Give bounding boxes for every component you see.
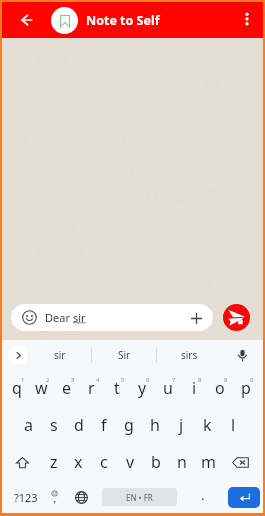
button[interactable]: Enter <box>228 487 260 508</box>
staticText: Dear <box>45 310 73 325</box>
staticText: 9 <box>224 376 228 384</box>
button[interactable]: b <box>143 444 169 481</box>
staticText: 8 <box>198 376 202 384</box>
button[interactable]: e <box>54 370 79 407</box>
staticText: p <box>241 377 251 399</box>
button[interactable]: s <box>41 407 66 444</box>
staticText: sir <box>54 348 66 362</box>
staticText: l <box>231 414 236 436</box>
staticText: u <box>163 377 173 399</box>
staticText: Note to Self <box>86 12 160 29</box>
staticText: sir <box>73 310 86 325</box>
button[interactable]: p <box>233 370 259 407</box>
staticText: ?123 <box>14 490 38 505</box>
staticText: 1 <box>21 376 25 384</box>
button[interactable]: j <box>168 407 194 444</box>
staticText: o <box>215 377 225 399</box>
button[interactable]: l <box>220 407 246 444</box>
button[interactable]: EN • FR <box>102 488 177 506</box>
staticText: d <box>74 414 84 436</box>
staticText: 0 <box>250 376 254 384</box>
staticText: f <box>101 414 107 436</box>
button[interactable]: n <box>169 444 195 481</box>
staticText: r <box>88 377 95 399</box>
staticText: h <box>150 414 160 436</box>
staticText: 3 <box>71 376 75 384</box>
button[interactable]: y <box>129 370 155 407</box>
button[interactable]: Shift <box>4 444 41 481</box>
button[interactable]: d <box>66 407 91 444</box>
staticText: i <box>192 377 197 399</box>
staticText: sirs <box>181 348 198 362</box>
button[interactable]: sir <box>28 340 91 370</box>
staticText: q <box>12 377 22 399</box>
staticText: Sir <box>118 348 131 362</box>
staticText: c <box>100 451 108 473</box>
staticText: t <box>114 377 120 399</box>
button[interactable]: w <box>29 370 54 407</box>
staticText: b <box>151 451 161 473</box>
staticText: m <box>201 451 216 473</box>
staticText: y <box>138 377 147 399</box>
button[interactable]: z <box>41 444 66 481</box>
button[interactable]: i <box>181 370 207 407</box>
button[interactable]: Back <box>12 7 38 33</box>
staticText: EN • FR <box>126 492 153 503</box>
button[interactable]: Backspace <box>221 444 259 481</box>
button[interactable]: sirs <box>157 340 221 370</box>
staticText: 5 <box>121 376 125 384</box>
button[interactable]: f <box>91 407 116 444</box>
button[interactable]: Dear <box>11 304 213 331</box>
button[interactable]: Emoji <box>49 481 60 513</box>
button[interactable]: r <box>79 370 104 407</box>
staticText: . <box>201 486 205 504</box>
staticText: 4 <box>96 376 100 384</box>
button[interactable]: g <box>116 407 142 444</box>
button[interactable]: u <box>155 370 181 407</box>
button[interactable]: c <box>91 444 117 481</box>
button[interactable]: t <box>104 370 129 407</box>
button[interactable]: ?123 <box>2 481 49 513</box>
staticText: k <box>203 414 212 436</box>
button[interactable]: o <box>207 370 233 407</box>
button[interactable]: k <box>194 407 220 444</box>
button[interactable]: Profile photo <box>51 7 78 34</box>
button[interactable]: Attach <box>188 310 204 326</box>
button[interactable]: More options <box>234 7 260 33</box>
button[interactable]: Expand toolbar <box>8 345 28 365</box>
button[interactable]: h <box>142 407 168 444</box>
staticText: e <box>62 377 72 399</box>
button[interactable]: Voice input <box>221 340 263 370</box>
button[interactable]: Send <box>223 304 250 331</box>
button[interactable]: m <box>195 444 221 481</box>
staticText: 6 <box>146 376 150 384</box>
button[interactable]: Sir <box>92 340 156 370</box>
button[interactable]: x <box>66 444 91 481</box>
staticText: w <box>35 377 48 399</box>
staticText: v <box>126 451 135 473</box>
staticText: a <box>24 414 33 436</box>
staticText: g <box>124 414 134 436</box>
button[interactable]: . <box>177 481 228 513</box>
button[interactable]: a <box>16 407 41 444</box>
staticText: n <box>177 451 187 473</box>
button[interactable]: v <box>117 444 143 481</box>
button[interactable]: q <box>4 370 29 407</box>
staticText: z <box>50 451 58 473</box>
staticText: x <box>74 451 83 473</box>
staticText: 7 <box>172 376 176 384</box>
button[interactable]: Change language <box>60 481 102 513</box>
staticText: j <box>179 414 184 436</box>
staticText: 2 <box>46 376 50 384</box>
staticText: s <box>50 414 58 436</box>
